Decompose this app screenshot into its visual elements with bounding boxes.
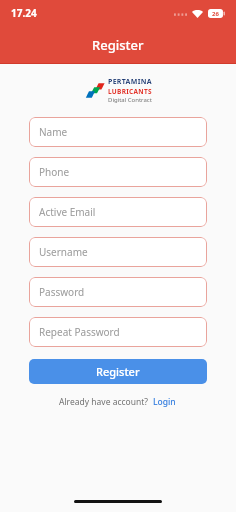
button[interactable]: Password [29, 277, 207, 307]
staticText: Username [39, 245, 88, 259]
button[interactable]: Login [152, 395, 177, 409]
button[interactable]: Phone [29, 157, 207, 187]
staticText: Digital Contract [108, 96, 152, 104]
button[interactable]: Repeat Password [29, 317, 207, 347]
staticText: 26 [212, 10, 219, 18]
staticText: LUBRICANTS [108, 87, 152, 96]
button[interactable]: Name [29, 117, 207, 147]
staticText: Active Email [39, 205, 96, 219]
staticText: Register [96, 364, 140, 379]
button[interactable]: Username [29, 237, 207, 267]
staticText: Login [153, 396, 176, 408]
staticText: Repeat Password [39, 325, 120, 339]
staticText: 17.24 [11, 6, 37, 20]
staticText: Name [39, 125, 68, 139]
button[interactable]: Register [29, 359, 207, 384]
staticText: Already have account? [59, 396, 148, 408]
button[interactable]: Active Email [29, 197, 207, 227]
staticText: Phone [39, 165, 70, 179]
staticText: Register [92, 36, 144, 54]
staticText: PERTAMINA [108, 77, 152, 87]
staticText: Password [39, 285, 85, 299]
